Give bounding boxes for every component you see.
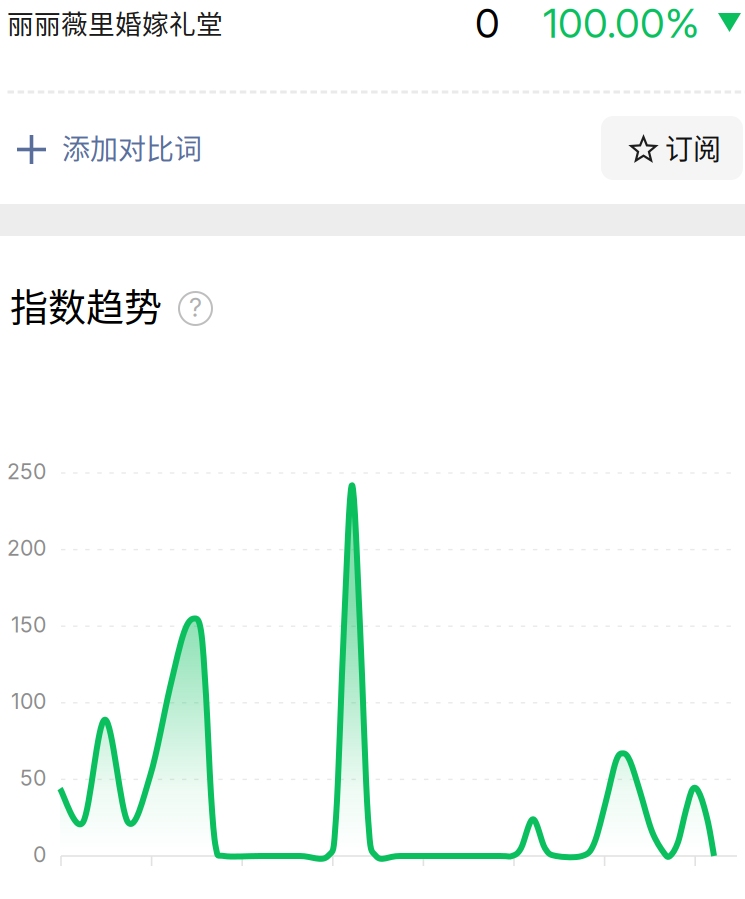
staticText: 150 — [11, 612, 46, 638]
staticText: 添加对比词 — [62, 127, 202, 167]
staticText: 250 — [7, 459, 46, 484]
staticText: 丽丽薇里婚嫁礼堂 — [7, 3, 223, 42]
staticText: 50 — [20, 765, 46, 791]
button[interactable]: 添加对比词 — [0, 115, 250, 181]
staticText: 指数趋势 — [10, 277, 162, 332]
button[interactable]: About index trend — [179, 292, 212, 325]
staticText: 100 — [11, 688, 46, 714]
staticText: 0 — [33, 842, 46, 867]
staticText: ? — [189, 292, 202, 323]
button[interactable]: 订阅 — [601, 116, 743, 180]
staticText: 0 — [475, 0, 500, 47]
staticText: 200 — [7, 535, 46, 561]
staticText: 100.00% — [543, 0, 699, 47]
staticText: 订阅 — [665, 127, 721, 167]
